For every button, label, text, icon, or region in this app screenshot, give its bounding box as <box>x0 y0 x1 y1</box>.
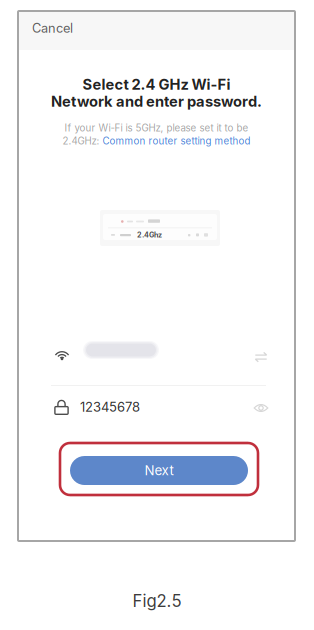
staticText: If your Wi-Fi is 5GHz, please set it to … <box>64 122 248 134</box>
button[interactable]: Switch network <box>246 344 276 370</box>
staticText: Cancel <box>32 20 73 36</box>
button[interactable]: Next <box>70 456 248 485</box>
staticText: Common router setting method <box>102 135 250 147</box>
button[interactable]: Show password <box>246 395 276 421</box>
staticText: Select 2.4 GHz Wi-Fi <box>82 76 230 93</box>
staticText: Fig2.5 <box>132 591 181 611</box>
staticText: 2.4Ghz <box>137 231 162 239</box>
button[interactable]: Common router setting method <box>102 135 250 147</box>
staticText: Network and enter password. <box>51 93 262 110</box>
staticText: 12345678 <box>80 399 140 415</box>
button[interactable]: Cancel <box>32 17 84 39</box>
staticText: 2.4GHz: <box>62 135 99 147</box>
staticText: Next <box>144 462 173 478</box>
